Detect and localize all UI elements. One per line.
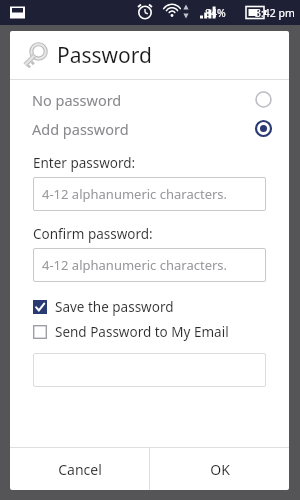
staticText: No password	[32, 90, 255, 110]
staticText: Confirm password:	[33, 225, 153, 243]
staticText: 4-12 alphanumeric characters.	[42, 185, 228, 203]
staticText: Password	[57, 41, 152, 70]
staticText: Cancel	[58, 460, 102, 479]
staticText: Enter password:	[33, 154, 136, 172]
button[interactable]: Cancel	[10, 448, 149, 490]
button[interactable]: No password	[10, 85, 289, 114]
button[interactable]: 4-12 alphanumeric characters.	[33, 177, 266, 211]
button[interactable]: Save the password	[10, 296, 289, 318]
button[interactable]: 4-12 alphanumeric characters.	[33, 248, 266, 282]
staticText: 4-12 alphanumeric characters.	[42, 256, 228, 274]
button[interactable]: Send Password to My Email	[10, 321, 289, 343]
staticText: OK	[210, 460, 230, 479]
staticText: Send Password to My Email	[55, 323, 229, 341]
button[interactable]: Add password	[10, 114, 289, 143]
staticText: 84%	[205, 6, 226, 20]
staticText: 3:42 pm	[255, 6, 295, 20]
button[interactable]	[33, 353, 266, 387]
staticText: Add password	[32, 119, 255, 139]
staticText: Save the password	[55, 298, 174, 316]
button[interactable]: OK	[150, 448, 289, 490]
